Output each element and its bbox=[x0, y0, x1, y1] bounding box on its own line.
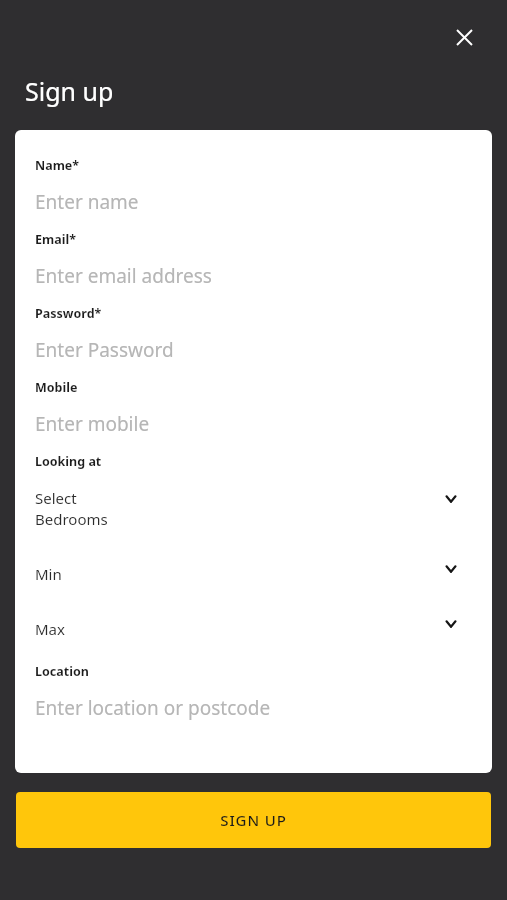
staticText: Enter Password bbox=[35, 337, 174, 363]
button[interactable]: SIGN UP bbox=[16, 792, 491, 848]
staticText: Enter name bbox=[35, 189, 139, 215]
staticText: Select bbox=[35, 488, 77, 508]
button[interactable]: Mobile bbox=[35, 379, 478, 437]
staticText: Enter email address bbox=[35, 263, 212, 289]
button[interactable]: Max bbox=[35, 608, 478, 639]
staticText: Looking at bbox=[35, 453, 102, 470]
staticText: Name* bbox=[35, 157, 80, 174]
button[interactable]: Name* bbox=[35, 157, 478, 215]
staticText: Location bbox=[35, 663, 89, 680]
button[interactable]: Email* bbox=[35, 231, 478, 289]
staticText: Email* bbox=[35, 231, 76, 248]
button[interactable]: Location bbox=[35, 663, 478, 721]
staticText: Max bbox=[35, 619, 65, 639]
staticText: Bedrooms bbox=[35, 509, 108, 529]
other: Expand looking at bbox=[441, 489, 461, 509]
button[interactable]: Close bbox=[447, 20, 481, 54]
button[interactable]: Min bbox=[35, 553, 478, 584]
staticText: Min bbox=[35, 564, 62, 584]
button[interactable]: Password* bbox=[35, 305, 478, 363]
staticText: Enter location or postcode bbox=[35, 695, 271, 721]
button[interactable]: Select bbox=[35, 488, 478, 529]
other: Expand Min bbox=[441, 559, 461, 579]
staticText: Sign up bbox=[25, 74, 114, 108]
staticText: SIGN UP bbox=[220, 810, 287, 830]
staticText: Password* bbox=[35, 305, 102, 322]
staticText: Enter mobile bbox=[35, 411, 150, 437]
staticText: Mobile bbox=[35, 379, 78, 396]
other: Expand Max bbox=[441, 614, 461, 634]
